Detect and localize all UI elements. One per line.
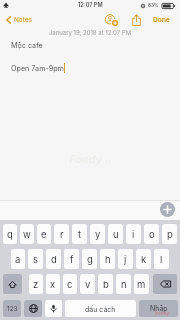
staticText: r [60, 229, 64, 240]
staticText: Done [153, 16, 170, 24]
button[interactable]: dấu cách [65, 300, 136, 317]
staticText: Open 7am-9pm [11, 64, 64, 73]
button[interactable]: Add people [105, 12, 125, 28]
staticText: w [23, 229, 31, 240]
staticText: g [87, 254, 93, 265]
staticText: h [105, 254, 111, 265]
button[interactable]: e [37, 224, 51, 244]
button[interactable]: m [134, 274, 149, 294]
staticText: z [33, 279, 39, 290]
button[interactable]: d [46, 249, 61, 269]
button[interactable]: p [162, 224, 177, 244]
staticText: Nhập [150, 304, 168, 312]
staticText: i [132, 229, 135, 240]
staticText: d [51, 254, 57, 265]
button[interactable]: k [136, 249, 151, 269]
button[interactable]: Shift [3, 274, 22, 294]
button[interactable]: Notes [0, 12, 38, 28]
button[interactable]: n [116, 274, 131, 294]
button[interactable]: f [64, 249, 79, 269]
button[interactable]: b [98, 274, 113, 294]
staticText: p [167, 229, 173, 240]
button[interactable]: Share [129, 13, 143, 27]
staticText: f [70, 254, 74, 265]
staticText: q [7, 229, 13, 240]
button[interactable]: x [46, 274, 60, 294]
button[interactable]: y [90, 224, 105, 244]
button[interactable]: r [54, 224, 69, 244]
button[interactable]: w [20, 224, 34, 244]
button[interactable]: o [144, 224, 159, 244]
button[interactable]: Next keyboard [24, 300, 42, 317]
staticText: l [160, 254, 163, 265]
staticText: Foody [69, 152, 103, 165]
staticText: s [33, 254, 39, 265]
button[interactable]: Dictate [45, 300, 62, 317]
staticText: a [15, 254, 21, 265]
staticText: e [41, 229, 47, 240]
staticText: j [124, 254, 127, 265]
staticText: foody [155, 310, 170, 316]
staticText: k [141, 254, 147, 265]
button[interactable]: Expand shortcuts [160, 202, 175, 217]
button[interactable]: s [28, 249, 43, 269]
staticText: b [103, 279, 109, 290]
staticText: n [121, 279, 127, 290]
button[interactable]: q [3, 224, 17, 244]
button[interactable]: g [82, 249, 97, 269]
staticText: m [137, 279, 146, 290]
staticText: o [149, 229, 155, 240]
staticText: v [85, 279, 91, 290]
button[interactable]: c [63, 274, 77, 294]
staticText: Mộc cafe [11, 41, 43, 50]
button[interactable]: z [29, 274, 43, 294]
button[interactable]: Done [151, 16, 172, 24]
staticText: 83% [148, 3, 159, 9]
button[interactable]: t [72, 224, 87, 244]
staticText: t [78, 229, 82, 240]
staticText: x [50, 279, 56, 290]
staticText: Notes [14, 16, 32, 24]
staticText: u [113, 229, 119, 240]
staticText: January 19, 2018 at 12:07 PM [0, 29, 180, 36]
button[interactable]: j [118, 249, 133, 269]
staticText: 123 [7, 305, 18, 313]
button[interactable]: i [126, 224, 141, 244]
staticText: y [95, 229, 101, 240]
button[interactable]: v [80, 274, 95, 294]
staticText: c [67, 279, 73, 290]
button[interactable]: Backspace [153, 274, 177, 294]
staticText: dấu cách [85, 305, 116, 313]
button[interactable]: a [11, 249, 25, 269]
button[interactable]: 123 [3, 300, 21, 317]
button[interactable]: l [154, 249, 169, 269]
button[interactable]: u [108, 224, 123, 244]
staticText: 12:07 PM [78, 2, 103, 9]
button[interactable]: Nhập [139, 300, 178, 317]
button[interactable]: h [100, 249, 115, 269]
